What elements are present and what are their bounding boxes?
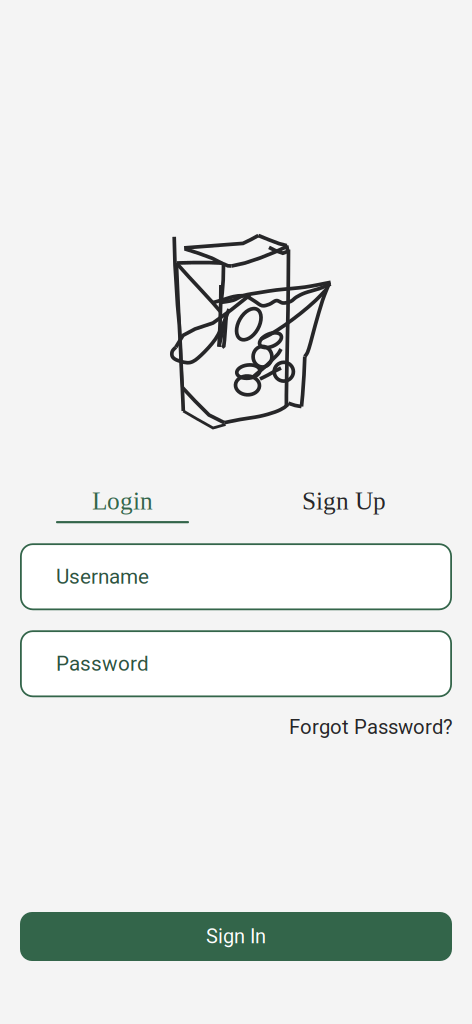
- button[interactable]: Password: [0, 630, 472, 697]
- button[interactable]: Sign Up: [302, 487, 386, 523]
- staticText: Password: [56, 652, 149, 676]
- button[interactable]: Sign In: [0, 912, 472, 961]
- button[interactable]: Username: [0, 543, 472, 610]
- button[interactable]: Forgot Password?: [289, 715, 453, 739]
- staticText: Forgot Password?: [289, 715, 453, 739]
- button[interactable]: Login: [56, 487, 189, 523]
- staticText: Sign In: [206, 925, 266, 948]
- staticText: Login: [92, 487, 153, 515]
- staticText: Sign Up: [302, 487, 386, 515]
- staticText: Username: [56, 565, 149, 589]
